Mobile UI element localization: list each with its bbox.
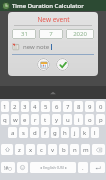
- button[interactable]: Expand suggestions: [48, 88, 58, 98]
- button[interactable]: 1: [1, 101, 9, 112]
- button[interactable]: 2: [11, 101, 19, 112]
- button[interactable]: c: [37, 144, 46, 155]
- button[interactable]: 0: [96, 101, 105, 112]
- staticText: o: [88, 116, 92, 124]
- staticText: u: [66, 116, 70, 124]
- button[interactable]: 7: [39, 29, 63, 39]
- staticText: 7: [49, 30, 53, 38]
- staticText: !#○: [4, 165, 13, 171]
- button[interactable]: 3: [21, 101, 29, 112]
- staticText: l: [94, 129, 96, 137]
- staticText: New event: [37, 15, 70, 24]
- button[interactable]: Note: [12, 43, 94, 51]
- staticText: 4: [33, 103, 37, 111]
- staticText: .: [82, 164, 84, 172]
- staticText: 0: [99, 103, 103, 111]
- button[interactable]: i: [74, 114, 83, 125]
- staticText: 2020: [73, 30, 87, 38]
- button[interactable]: u: [63, 114, 72, 125]
- button[interactable]: 6: [52, 101, 61, 112]
- button[interactable]: l: [91, 127, 99, 138]
- button[interactable]: 7: [63, 101, 72, 112]
- button[interactable]: e: [21, 114, 29, 125]
- button[interactable]: g: [51, 127, 59, 138]
- staticText: 8: [77, 103, 81, 111]
- staticText: 5: [44, 103, 48, 111]
- button[interactable]: r: [31, 114, 39, 125]
- staticText: 2: [13, 103, 17, 111]
- button[interactable]: t: [41, 114, 50, 125]
- staticText: 31: [21, 30, 28, 38]
- staticText: k: [83, 129, 87, 137]
- staticText: f: [44, 129, 47, 137]
- button[interactable]: v: [48, 144, 57, 155]
- staticText: h: [63, 129, 67, 137]
- button[interactable]: Enter: [90, 162, 105, 173]
- staticText: new note: [23, 43, 50, 51]
- button[interactable]: x: [26, 144, 35, 155]
- button[interactable]: s: [19, 127, 28, 138]
- button[interactable]: h: [61, 127, 69, 138]
- button[interactable]: f: [41, 127, 49, 138]
- staticText: x: [29, 146, 33, 154]
- staticText: e: [23, 116, 27, 124]
- button[interactable]: 4: [31, 101, 39, 112]
- staticText: n: [73, 146, 77, 154]
- button[interactable]: m: [81, 144, 90, 155]
- staticText: 9: [88, 103, 92, 111]
- button[interactable]: Shift: [1, 144, 13, 155]
- button[interactable]: j: [71, 127, 79, 138]
- button[interactable]: Confirm: [56, 58, 69, 71]
- staticText: c: [40, 146, 43, 154]
- staticText: g: [53, 129, 57, 137]
- staticText: j: [74, 129, 76, 137]
- button[interactable]: q: [1, 114, 9, 125]
- button[interactable]: z: [15, 144, 24, 155]
- staticText: y: [55, 116, 59, 124]
- staticText: q: [3, 116, 7, 124]
- button[interactable]: w: [11, 114, 19, 125]
- staticText: b: [62, 146, 66, 154]
- button[interactable]: Symbols: [1, 162, 15, 173]
- button[interactable]: Period: [78, 162, 88, 173]
- staticText: w: [13, 116, 18, 124]
- other: App icon: [2, 2, 10, 10]
- button[interactable]: b: [59, 144, 68, 155]
- staticText: a: [11, 129, 15, 137]
- staticText: z: [18, 146, 21, 154]
- button[interactable]: y: [52, 114, 61, 125]
- staticText: 1: [3, 103, 7, 111]
- button[interactable]: 8: [74, 101, 83, 112]
- staticText: m: [83, 146, 89, 154]
- button[interactable]: 2020: [66, 29, 94, 39]
- button[interactable]: a: [8, 127, 17, 138]
- other: Note: [12, 43, 20, 51]
- button[interactable]: Pick date: [37, 58, 50, 71]
- staticText: p: [99, 116, 103, 124]
- button[interactable]: Backspace: [92, 144, 105, 155]
- staticText: v: [51, 146, 55, 154]
- button[interactable]: k: [81, 127, 89, 138]
- staticText: i: [78, 116, 80, 124]
- button[interactable]: d: [30, 127, 39, 138]
- button[interactable]: Emoji: [17, 162, 28, 173]
- staticText: 3: [23, 103, 27, 111]
- staticText: d: [33, 129, 37, 137]
- button[interactable]: o: [85, 114, 94, 125]
- staticText: 6: [55, 103, 59, 111]
- staticText: Time Duration Calculator: [12, 2, 84, 10]
- staticText: 7: [66, 103, 70, 111]
- button[interactable]: 31: [12, 29, 36, 39]
- staticText: ◂ English (US) ▸: [40, 165, 67, 170]
- button[interactable]: Space: [30, 162, 76, 173]
- button[interactable]: p: [96, 114, 105, 125]
- staticText: r: [34, 116, 37, 124]
- staticText: s: [22, 129, 25, 137]
- button[interactable]: 9: [85, 101, 94, 112]
- staticText: t: [44, 116, 47, 124]
- button[interactable]: n: [70, 144, 79, 155]
- button[interactable]: 5: [41, 101, 50, 112]
